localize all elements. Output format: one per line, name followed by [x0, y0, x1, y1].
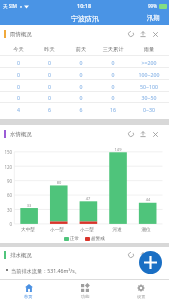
staticText: 0: [34, 83, 65, 90]
staticText: 0: [3, 71, 34, 78]
button[interactable]: Refresh: [128, 252, 134, 258]
staticText: 99%: [148, 3, 157, 9]
staticText: 44: [139, 197, 157, 202]
button[interactable]: Close: [152, 131, 158, 137]
staticText: 33: [20, 203, 38, 208]
staticText: 汛期: [147, 14, 160, 22]
staticText: 60: [0, 192, 12, 198]
button[interactable]: 功能: [57, 280, 113, 300]
button[interactable]: 设置: [113, 280, 169, 300]
staticText: 0: [65, 94, 97, 101]
button[interactable]: Close: [152, 31, 158, 37]
staticText: 天 SIM: [3, 3, 17, 9]
staticText: 10:18: [77, 2, 92, 9]
staticText: 0: [3, 59, 34, 66]
staticText: 0~30: [129, 106, 169, 113]
staticText: 0: [65, 59, 97, 66]
staticText: 0: [97, 94, 129, 101]
staticText: 三天累计: [97, 46, 129, 53]
staticText: 0: [65, 83, 97, 90]
staticText: 0: [3, 83, 34, 90]
staticText: 100~200: [129, 71, 169, 78]
staticText: 0: [3, 94, 34, 101]
staticText: 昨天: [34, 46, 65, 53]
staticText: 6: [34, 106, 65, 113]
staticText: 0: [0, 221, 12, 227]
staticText: 0: [65, 71, 97, 78]
staticText: 6: [65, 106, 97, 113]
staticText: >=200: [129, 59, 169, 66]
button[interactable]: 汛期: [147, 14, 160, 22]
button[interactable]: Expand: [140, 131, 146, 137]
button[interactable]: Refresh: [128, 31, 134, 37]
staticText: 超警戒: [91, 236, 105, 242]
staticText: 河道: [105, 227, 129, 233]
staticText: 150: [0, 149, 12, 155]
staticText: 30~50: [129, 94, 169, 101]
staticText: 排水概况: [10, 252, 32, 259]
staticText: 90: [0, 178, 12, 184]
staticText: 正常: [70, 236, 80, 242]
staticText: 4: [3, 106, 34, 113]
staticText: 前天: [65, 46, 97, 53]
staticText: 功能: [81, 294, 90, 299]
staticText: 0: [34, 71, 65, 78]
staticText: 潮位: [134, 227, 158, 233]
staticText: 雨情概况: [10, 31, 32, 38]
staticText: 50~100: [129, 83, 169, 90]
button[interactable]: 首页: [0, 280, 57, 300]
staticText: 80: [50, 180, 68, 185]
staticText: 120: [0, 164, 12, 170]
staticText: 当前排水流量：531.46m³/s。: [11, 267, 80, 274]
staticText: 水情概况: [10, 131, 32, 138]
button[interactable]: Close: [152, 252, 158, 258]
staticText: 16: [97, 106, 129, 113]
staticText: 小二型: [75, 227, 99, 233]
button[interactable]: Refresh: [128, 131, 134, 137]
staticText: 47: [79, 196, 97, 201]
staticText: 149: [109, 147, 127, 152]
staticText: 0: [97, 83, 129, 90]
staticText: 0: [34, 94, 65, 101]
button[interactable]: Expand: [140, 252, 146, 258]
staticText: 今天: [3, 46, 34, 53]
staticText: 小一型: [45, 227, 69, 233]
staticText: 0: [97, 71, 129, 78]
staticText: 30: [0, 207, 12, 213]
button[interactable]: Expand: [140, 31, 146, 37]
button[interactable]: Add: [139, 251, 162, 274]
staticText: 雨量: [129, 46, 169, 53]
staticText: 首页: [24, 294, 33, 299]
staticText: 0: [34, 59, 65, 66]
staticText: 宁波防汛: [71, 14, 99, 23]
staticText: 大中型: [16, 227, 40, 233]
staticText: 0: [97, 59, 129, 66]
staticText: 设置: [137, 294, 146, 299]
